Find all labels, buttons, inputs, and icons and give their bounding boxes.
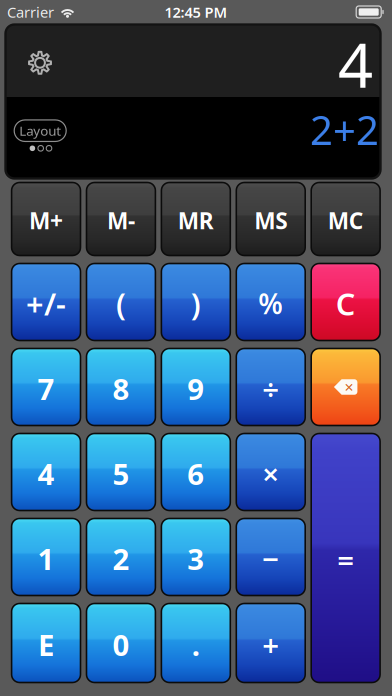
button[interactable]: 1 [12,518,80,595]
staticText: 2 [112,539,129,578]
staticText: 0 [112,625,129,664]
staticText: MC [328,205,364,235]
staticText: ( [116,283,126,324]
button[interactable]: C [311,263,380,340]
staticText: 4 [38,454,55,493]
button[interactable]: Delete [311,348,380,425]
button[interactable]: = [311,433,380,682]
staticText: 9 [187,369,204,408]
staticText: M+ [29,205,63,235]
staticText: − [262,539,279,578]
button[interactable]: ( [86,263,155,340]
staticText: 4 [338,23,373,105]
staticText: 7 [38,369,55,408]
button[interactable]: MS [236,182,305,255]
button[interactable]: % [236,263,305,340]
button[interactable]: − [236,518,305,595]
staticText: 8 [112,369,129,408]
button[interactable]: Settings [27,50,53,76]
button[interactable]: × [236,433,305,510]
button[interactable]: ÷ [236,348,305,425]
staticText: +/- [26,283,66,324]
button[interactable]: . [161,603,230,682]
staticText: ✕ [344,381,354,394]
staticText: E [38,625,54,664]
staticText: 5 [112,454,129,493]
staticText: 2+2 [310,103,379,156]
staticText: = [337,540,354,579]
button[interactable]: 9 [161,348,230,425]
button[interactable]: 6 [161,433,230,510]
staticText: ) [191,283,201,324]
staticText: % [258,285,283,322]
button[interactable]: M+ [12,182,80,255]
button[interactable]: 8 [86,348,155,425]
button[interactable]: 5 [86,433,155,510]
button[interactable]: Layout [14,120,66,141]
staticText: M- [107,205,135,235]
staticText: × [262,454,279,493]
staticText: + [262,625,279,664]
button[interactable]: 3 [161,518,230,595]
staticText: C [336,283,356,324]
button[interactable]: 2 [86,518,155,595]
button[interactable]: E [12,603,80,682]
button[interactable]: 7 [12,348,80,425]
staticText: 6 [187,454,204,493]
staticText: 1 [38,539,55,578]
staticText: 3 [187,539,204,578]
button[interactable]: ) [161,263,230,340]
staticText: MR [178,205,214,235]
staticText: . [192,625,200,664]
staticText: ÷ [262,369,279,408]
button[interactable]: +/- [12,263,80,340]
staticText: MS [254,205,287,235]
staticText: 12:45 PM [164,2,227,22]
button[interactable]: MR [161,182,230,255]
button[interactable]: M- [86,182,155,255]
staticText: Layout [19,122,61,139]
button[interactable]: MC [311,182,380,255]
button[interactable]: + [236,603,305,682]
staticText: Carrier [7,2,54,22]
button[interactable]: 4 [12,433,80,510]
button[interactable]: 0 [86,603,155,682]
